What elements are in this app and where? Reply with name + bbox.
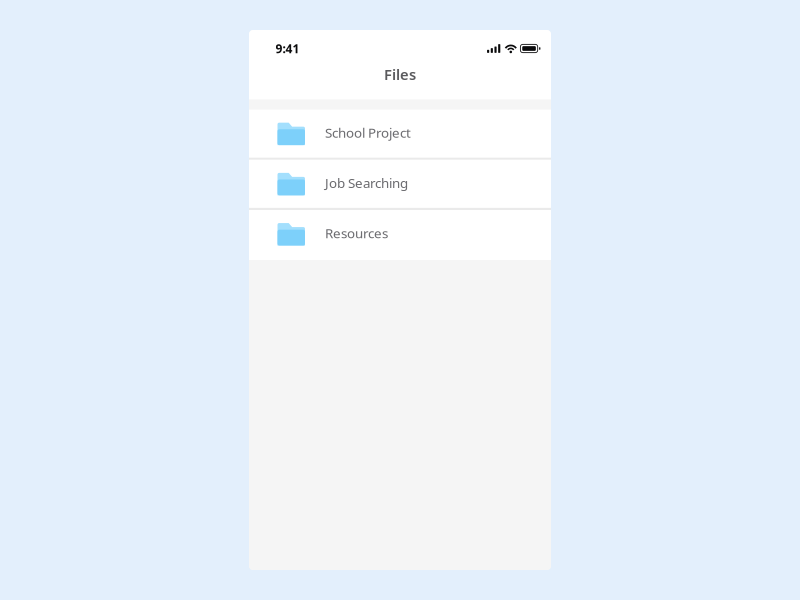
staticText: 9:41	[275, 40, 299, 56]
staticText: School Project	[325, 124, 411, 141]
staticText: Job Searching	[325, 174, 408, 192]
button[interactable]: School Project	[249, 110, 551, 160]
button[interactable]: Job Searching	[249, 160, 551, 210]
staticText: Files	[384, 65, 416, 84]
button[interactable]: Resources	[249, 210, 551, 260]
staticText: Resources	[325, 224, 388, 242]
